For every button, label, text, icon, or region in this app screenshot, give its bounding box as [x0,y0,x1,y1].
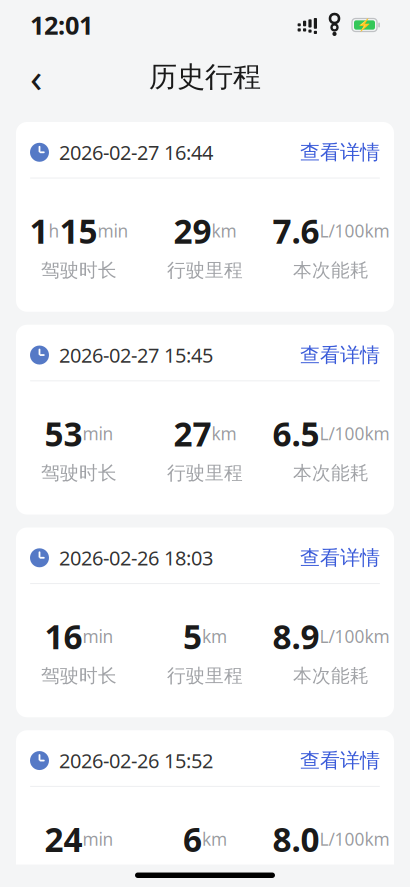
staticText: 查看详情 [300,140,380,165]
staticText: L/100km [319,827,389,850]
staticText: 6.5 [272,411,319,456]
staticText: km [211,422,236,445]
staticText: 7.6 [272,209,319,253]
staticText: 行驶里程 [167,462,243,484]
staticText: 本次能耗 [293,259,369,282]
staticText: min [82,625,113,648]
staticText: 驾驶时长 [41,259,117,282]
staticText: 53 [44,411,82,456]
staticText: 8.9 [272,614,319,658]
staticText: L/100km [319,625,389,648]
staticText: km [211,219,236,242]
staticText: 16 [44,614,82,658]
staticText: 2026-02-26 15:52 [59,747,213,774]
staticText: km [202,827,227,850]
staticText: min [82,827,113,850]
staticText: ⚡ [357,18,372,32]
staticText: 2026-02-26 18:03 [59,544,213,571]
staticText: 行驶里程 [167,664,243,687]
staticText: km [202,625,227,648]
staticText: 本次能耗 [293,664,369,687]
staticText: 行驶里程 [167,867,243,887]
staticText: 行驶里程 [167,259,243,282]
staticText: 29 [173,209,211,253]
staticText: L/100km [319,219,389,242]
staticText: 6 [183,817,202,861]
staticText: 2026-02-27 16:44 [59,139,213,166]
button[interactable]: 查看详情 [300,744,380,777]
staticText: 5 [183,614,202,658]
staticText: min [82,422,113,445]
staticText: 历史行程 [149,60,261,94]
staticText: 1 [29,209,48,253]
staticText: 12:01 [30,8,93,42]
staticText: 15 [59,209,97,253]
button[interactable]: 查看详情 [300,339,380,371]
staticText: min [97,219,128,242]
button[interactable]: Back [14,55,58,99]
staticText: 查看详情 [300,748,380,773]
staticText: 24 [44,817,82,861]
staticText: 查看详情 [300,545,380,570]
staticText: 驾驶时长 [41,664,117,687]
staticText: 2026-02-27 15:45 [59,342,213,368]
staticText: 本次能耗 [293,462,369,484]
staticText: 驾驶时长 [41,462,117,484]
button[interactable]: 查看详情 [300,541,380,574]
staticText: h [48,219,59,242]
staticText: L/100km [319,422,389,445]
staticText: 27 [173,411,211,456]
staticText: ‹ [30,50,42,103]
button[interactable]: 查看详情 [300,136,380,169]
staticText: 8.0 [272,817,319,861]
staticText: 查看详情 [300,343,380,367]
